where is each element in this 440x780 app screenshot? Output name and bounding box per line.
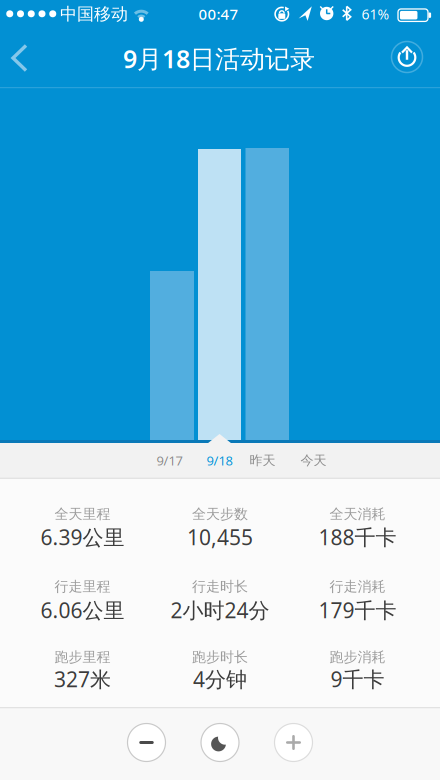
button[interactable]: Decrease <box>126 722 166 762</box>
staticText: 全天消耗 <box>329 505 385 523</box>
staticText: 188千卡 <box>318 523 396 551</box>
staticText: 9月18日活动记录 <box>123 42 315 75</box>
button[interactable]: Back <box>2 42 38 74</box>
staticText: 327米 <box>54 665 111 693</box>
button[interactable]: Increase <box>273 722 313 762</box>
staticText: 今天 <box>300 452 326 468</box>
staticText: 10,455 <box>187 523 253 551</box>
staticText: 行走里程 <box>54 578 110 595</box>
staticText: 9千卡 <box>330 665 384 693</box>
staticText: 跑步消耗 <box>329 648 385 666</box>
staticText: 中国移动 <box>60 4 128 24</box>
staticText: 行走时长 <box>192 578 248 595</box>
staticText: 跑步里程 <box>54 648 110 666</box>
staticText: 179千卡 <box>318 596 396 624</box>
staticText: 4分钟 <box>193 665 247 693</box>
staticText: 6.06公里 <box>40 596 124 624</box>
staticText: 9/18 <box>206 452 232 469</box>
button[interactable]: 今天 <box>290 443 336 477</box>
staticText: 2小时24分 <box>170 596 269 624</box>
button[interactable]: 9/17 <box>146 443 192 477</box>
button[interactable]: Share <box>387 37 427 77</box>
staticText: 跑步时长 <box>192 648 248 666</box>
button[interactable]: 9/18 <box>196 443 242 477</box>
staticText: 00:47 <box>199 4 239 24</box>
staticText: 61% <box>361 5 389 23</box>
button[interactable]: 昨天 <box>239 443 285 477</box>
staticText: 全天里程 <box>54 505 110 523</box>
button[interactable]: Sleep <box>200 722 240 762</box>
staticText: 昨天 <box>249 452 275 468</box>
staticText: 9/17 <box>156 452 182 469</box>
staticText: 全天步数 <box>192 505 248 523</box>
staticText: 6.39公里 <box>40 523 124 551</box>
staticText: 行走消耗 <box>329 578 385 595</box>
